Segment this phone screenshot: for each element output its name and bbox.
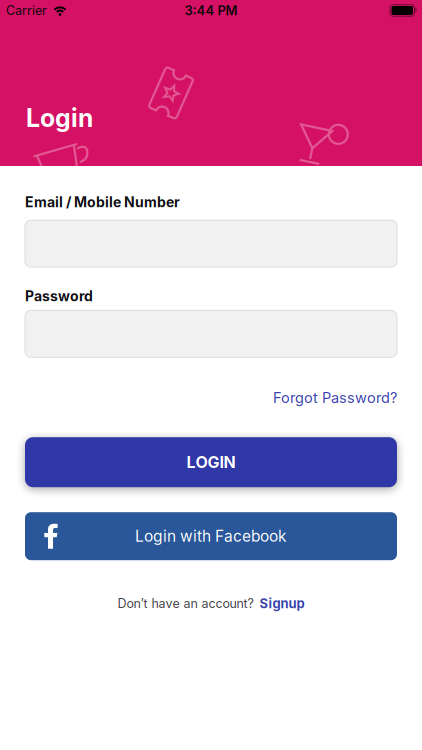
button[interactable]: LOGIN [25,437,397,487]
staticText: Don’t have an account? [117,595,253,613]
staticText: Login [26,100,93,136]
button[interactable]: Login with Facebook [25,512,397,560]
staticText: 3:44 PM [184,1,237,20]
button[interactable]: Signup [259,594,304,613]
staticText: Carrier [6,1,47,19]
staticText: Email / Mobile Number [25,192,180,212]
staticText: Signup [259,594,304,613]
staticText: Password [25,286,93,306]
staticText: Login with Facebook [135,525,287,547]
staticText: Forgot Password? [273,387,397,408]
button[interactable]: Forgot Password? [273,387,397,408]
staticText: LOGIN [186,451,235,474]
